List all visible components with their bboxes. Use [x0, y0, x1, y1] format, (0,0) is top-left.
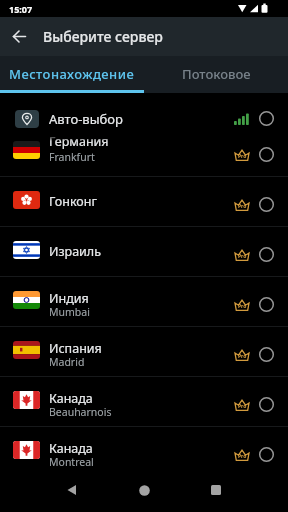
staticText: Местонахождение	[9, 65, 135, 83]
staticText: Pro	[238, 153, 247, 160]
staticText: Германия	[49, 133, 109, 150]
staticText: Выберите сервер	[43, 27, 163, 46]
staticText: Pro	[238, 303, 247, 310]
button[interactable]: Канада	[0, 376, 288, 426]
button[interactable]	[197, 471, 235, 509]
staticText: Montreal	[49, 455, 94, 469]
staticText: Pro	[238, 403, 247, 410]
button[interactable]: Местонахождение	[0, 56, 144, 93]
staticText: 15:07	[9, 3, 33, 15]
button[interactable]: Авто-выбор	[0, 93, 288, 132]
button[interactable]: Гонконг	[0, 176, 288, 226]
button[interactable]	[53, 471, 91, 509]
staticText: Pro	[238, 353, 247, 360]
staticText: Канада	[49, 390, 93, 407]
staticText: Pro	[238, 453, 247, 460]
staticText: Beauharnois	[49, 405, 112, 419]
staticText: Испания	[49, 340, 102, 357]
staticText: Pro	[238, 203, 247, 210]
button[interactable]: Потоковое	[144, 56, 288, 93]
button[interactable]: Германия	[0, 126, 288, 176]
button[interactable]	[125, 471, 163, 509]
button[interactable]: Канада	[0, 426, 288, 476]
staticText: Индия	[49, 290, 89, 307]
staticText: Mumbai	[49, 305, 90, 319]
staticText: Авто-выбор	[49, 110, 123, 128]
staticText: Pro	[238, 253, 247, 260]
staticText: Потоковое	[182, 65, 251, 83]
staticText: Гонконг	[49, 193, 97, 210]
button[interactable]: Индия	[0, 276, 288, 326]
button[interactable]	[0, 17, 39, 56]
staticText: Frankfurt	[49, 150, 95, 164]
button[interactable]: Израиль	[0, 226, 288, 276]
staticText: Madrid	[49, 355, 85, 369]
staticText: Израиль	[49, 243, 102, 260]
staticText: Канада	[49, 440, 93, 457]
button[interactable]: Испания	[0, 326, 288, 376]
